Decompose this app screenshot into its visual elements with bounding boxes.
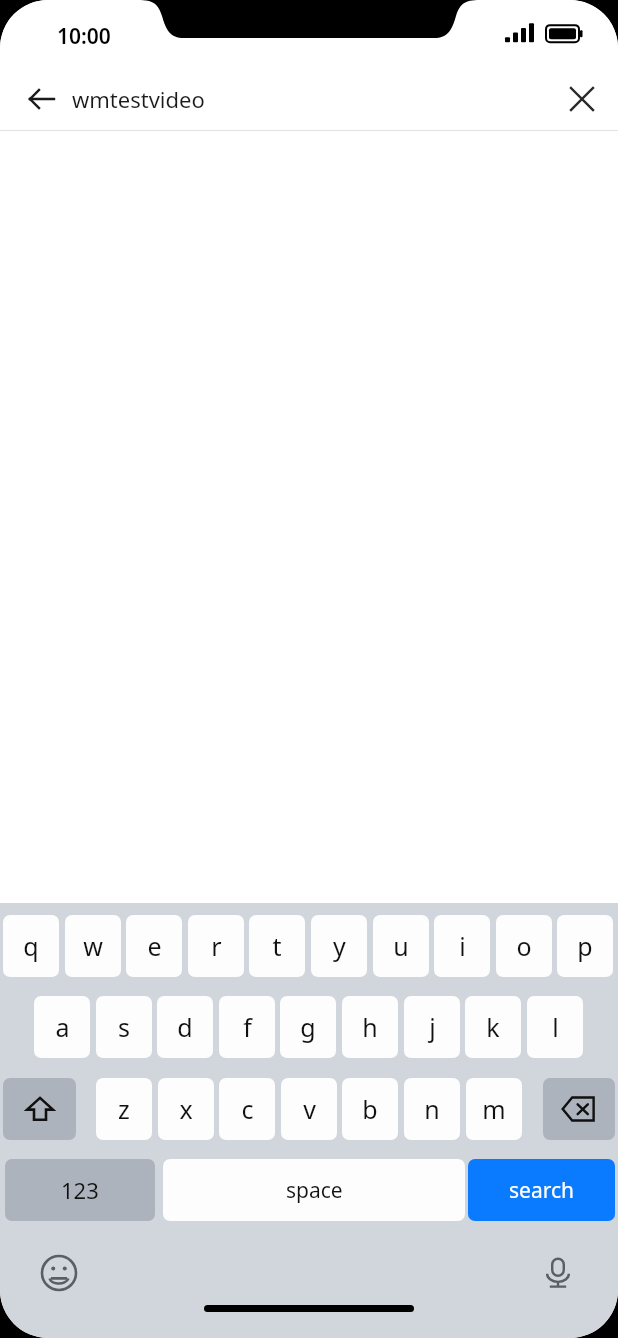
staticText: wmtestvideo [72, 84, 205, 114]
button[interactable]: Clear [560, 77, 604, 121]
button[interactable]: o [496, 915, 552, 977]
button[interactable]: p [557, 915, 613, 977]
staticText: e [147, 929, 162, 963]
button[interactable]: x [158, 1078, 214, 1140]
button[interactable]: f [219, 996, 275, 1058]
staticText: q [23, 929, 39, 963]
button[interactable]: q [3, 915, 59, 977]
staticText: d [177, 1010, 193, 1044]
staticText: j [429, 1010, 436, 1044]
button[interactable]: e [126, 915, 182, 977]
staticText: search [509, 1176, 574, 1205]
staticText: w [83, 929, 103, 963]
staticText: 123 [61, 1175, 99, 1205]
button[interactable]: a [34, 996, 90, 1058]
staticText: 10:00 [57, 22, 111, 51]
button[interactable]: u [373, 915, 429, 977]
button[interactable]: l [527, 996, 583, 1058]
button[interactable]: m [466, 1078, 522, 1140]
staticText: z [118, 1092, 130, 1126]
button[interactable]: g [280, 996, 336, 1058]
button[interactable]: z [96, 1078, 152, 1140]
button[interactable]: b [342, 1078, 398, 1140]
staticText: a [55, 1010, 70, 1044]
staticText: o [516, 929, 532, 963]
staticText: g [300, 1010, 316, 1044]
button[interactable]: k [465, 996, 521, 1058]
button[interactable]: Backspace [543, 1078, 615, 1140]
staticText: p [577, 929, 593, 963]
staticText: r [211, 929, 222, 963]
staticText: n [424, 1092, 440, 1126]
button[interactable]: search [468, 1159, 615, 1221]
staticText: b [362, 1092, 378, 1126]
button[interactable]: h [342, 996, 398, 1058]
staticText: c [241, 1092, 254, 1126]
button[interactable]: r [188, 915, 244, 977]
button[interactable]: Back [20, 77, 64, 121]
staticText: k [486, 1010, 500, 1044]
button[interactable]: space [163, 1159, 465, 1221]
staticText: h [362, 1010, 378, 1044]
staticText: f [243, 1010, 252, 1044]
button[interactable]: Voice input [536, 1251, 580, 1295]
button[interactable]: i [434, 915, 490, 977]
staticText: i [459, 929, 466, 963]
button[interactable]: y [311, 915, 367, 977]
staticText: m [482, 1092, 506, 1126]
button[interactable]: s [96, 996, 152, 1058]
button[interactable]: 123 [5, 1159, 155, 1221]
button[interactable]: Emoji [37, 1251, 81, 1295]
button[interactable]: Shift [3, 1078, 76, 1140]
staticText: t [272, 929, 282, 963]
staticText: y [333, 929, 346, 963]
staticText: x [179, 1092, 193, 1126]
button[interactable]: t [249, 915, 305, 977]
staticText: s [118, 1010, 130, 1044]
button[interactable]: n [404, 1078, 460, 1140]
button[interactable]: j [404, 996, 460, 1058]
staticText: l [552, 1010, 559, 1044]
button[interactable]: d [157, 996, 213, 1058]
staticText: v [303, 1092, 316, 1126]
staticText: u [393, 929, 409, 963]
button[interactable]: v [281, 1078, 337, 1140]
staticText: space [286, 1176, 343, 1205]
button[interactable]: w [65, 915, 121, 977]
button[interactable]: c [219, 1078, 275, 1140]
